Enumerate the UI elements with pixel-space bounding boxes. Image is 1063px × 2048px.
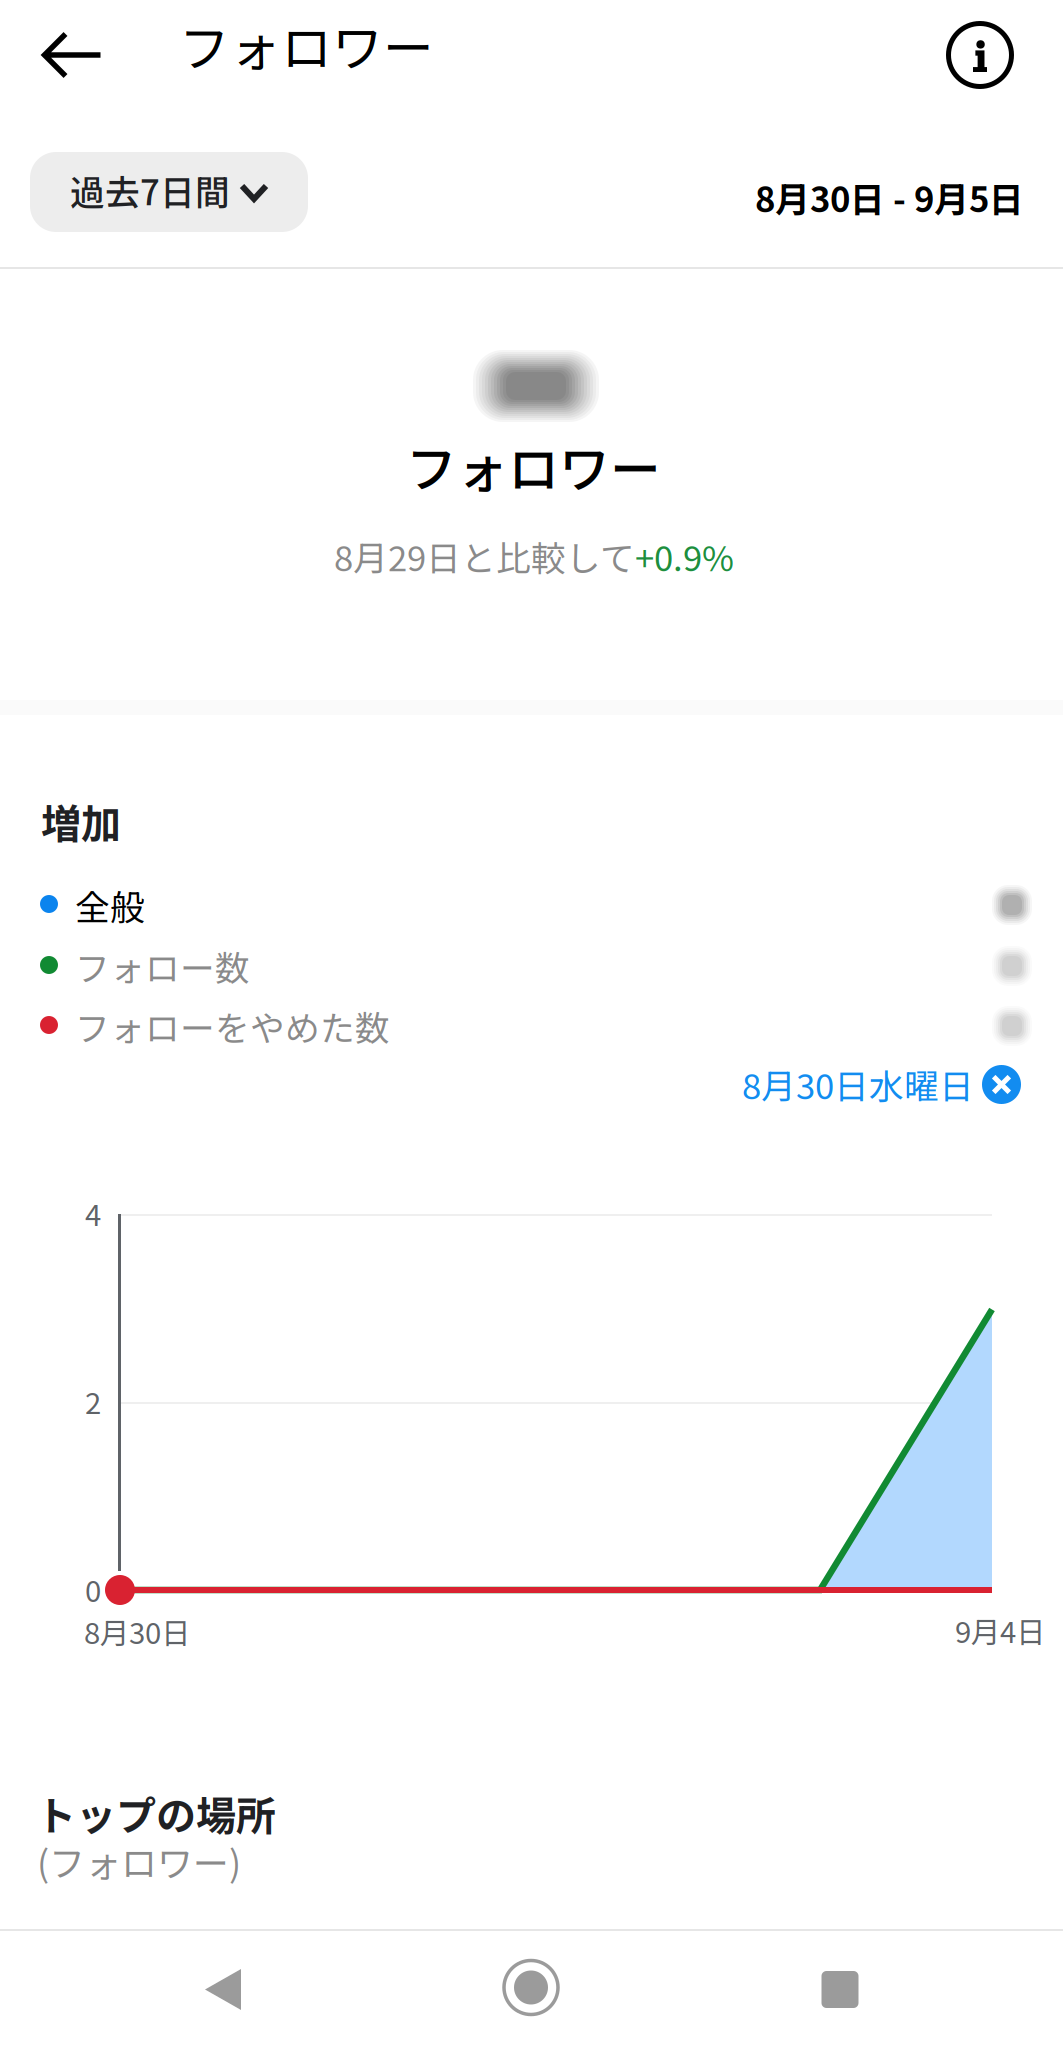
staticText: (フォロワー) — [37, 1835, 241, 1887]
button[interactable]: Back — [18, 10, 127, 100]
staticText: 8月30日水曜日 — [742, 1059, 974, 1109]
button[interactable]: Information — [930, 5, 1030, 105]
staticText: 全般 — [75, 880, 145, 930]
button[interactable]: Home — [472, 1929, 590, 2046]
staticText: 8月30日 — [84, 1610, 190, 1652]
staticText: 2 — [85, 1380, 101, 1422]
staticText: +0.9% — [635, 531, 734, 581]
staticText: トップの場所 — [36, 1784, 276, 1842]
button[interactable]: Back — [164, 1931, 282, 2048]
staticText: フォロワー — [406, 429, 661, 502]
staticText: フォローをやめた数 — [75, 1001, 390, 1051]
staticText: 0 — [85, 1568, 101, 1610]
staticText: 増加 — [41, 792, 121, 850]
staticText: 9月4日 — [955, 1609, 1045, 1651]
staticText: 8月30日 - 9月5日 — [755, 172, 1024, 222]
staticText: フォロー数 — [75, 941, 250, 991]
staticText: 過去7日間 — [70, 165, 230, 215]
staticText: 8月29日と比較して — [334, 531, 635, 581]
button[interactable]: 8月30日水曜日 — [742, 1059, 1021, 1109]
staticText: 4 — [85, 1192, 101, 1234]
staticText: フォロワー — [179, 8, 434, 81]
button[interactable]: 過去7日間 — [30, 152, 308, 232]
button[interactable]: Recent apps — [781, 1931, 899, 2048]
